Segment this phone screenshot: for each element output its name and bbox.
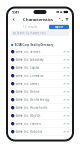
staticText: Acme Inc. Online: [16, 90, 40, 93]
button[interactable]: Search by characteristic: [8, 30, 72, 36]
staticText: ACME Corp Facility Directory: [14, 43, 52, 47]
button[interactable]: Acme Inc. Partners: [8, 120, 72, 128]
button[interactable]: Acme Inc. Capital: [8, 64, 72, 72]
staticText: Acme Inc. Robotics: [16, 130, 42, 133]
staticText: Acme Inc. Services: [16, 50, 40, 53]
staticText: Acme Inc. Households: [16, 106, 47, 109]
button[interactable]: Sort: [65, 17, 69, 22]
staticText: Characteristics: [23, 17, 53, 22]
button[interactable]: Export: [49, 25, 69, 29]
staticText: Export: [55, 25, 63, 29]
button[interactable]: Acme Inc. Dental Energy: [8, 96, 72, 104]
staticText: Acme Inc. Capital: [16, 66, 39, 69]
button[interactable]: Acme Inc. Commerce: [8, 72, 72, 80]
staticText: Acme Inc. Commerce: [16, 74, 44, 77]
staticText: 12 results: [23, 25, 37, 29]
button[interactable]: Acme Inc. Devices: [8, 80, 72, 88]
button[interactable]: Filter: [59, 17, 63, 22]
staticText: Acme Inc. Dental Energy: [16, 98, 49, 101]
button[interactable]: Acme Inc. Subsidiary: [8, 56, 72, 64]
button[interactable]: Acme Inc. Services: [8, 48, 72, 56]
staticText: Acme Inc. Subsidiary: [16, 58, 43, 61]
button[interactable]: Acme Inc. Households: [8, 104, 72, 112]
staticText: 9:41: [12, 9, 19, 15]
staticText: Acme Inc. Objects: [16, 114, 40, 117]
button[interactable]: Acme Inc. Objects: [8, 112, 72, 120]
button[interactable]: Acme Inc. Online: [8, 88, 72, 96]
staticText: Search by characteristic: [17, 31, 46, 35]
staticText: Acme Inc. Devices: [16, 82, 39, 85]
staticText: Acme Inc. Partners: [16, 122, 41, 125]
button[interactable]: Back: [11, 16, 17, 22]
button[interactable]: Acme Inc. Robotics: [8, 128, 72, 136]
